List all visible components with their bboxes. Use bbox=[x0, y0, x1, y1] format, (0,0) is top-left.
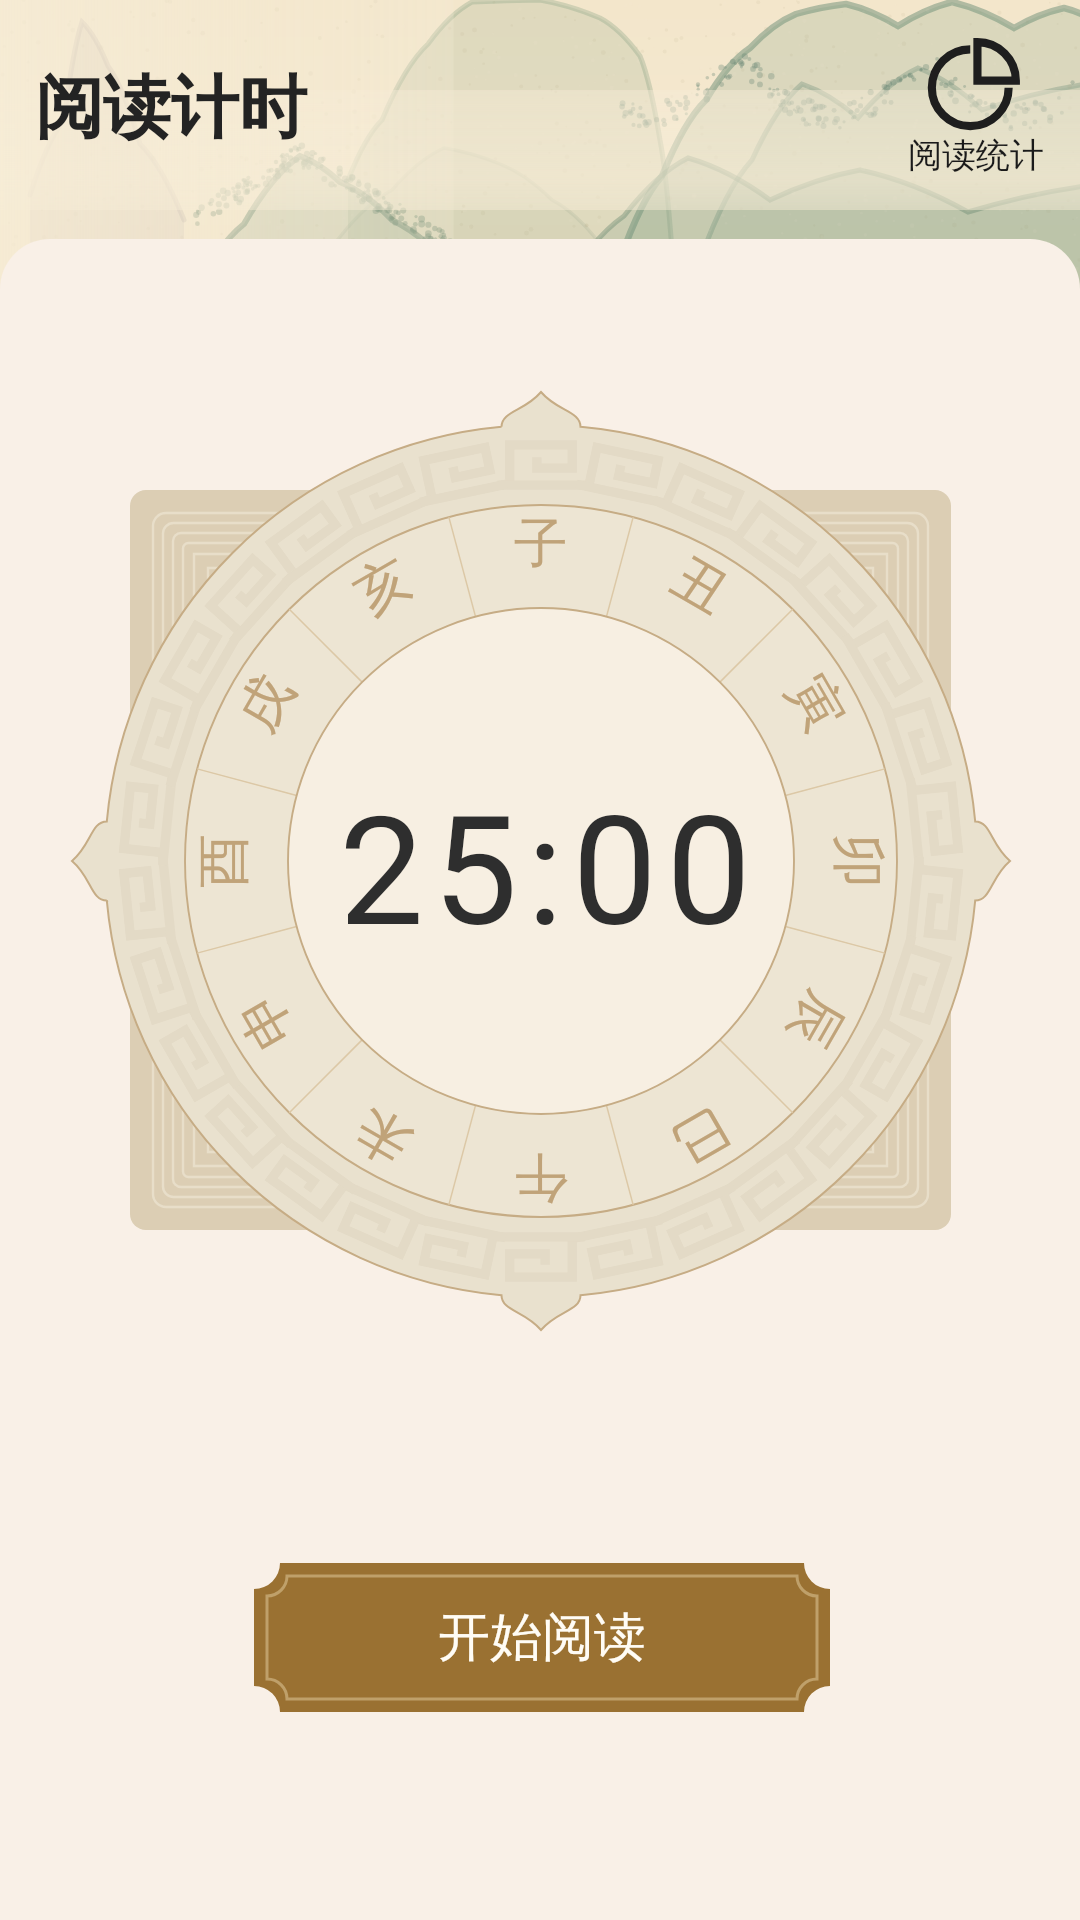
staticText: 卯 bbox=[824, 834, 892, 888]
staticText: 午 bbox=[514, 1144, 568, 1212]
staticText: 25:00 bbox=[339, 784, 761, 961]
staticText: 阅读统计 bbox=[908, 134, 1044, 177]
staticText: 戌 bbox=[223, 663, 309, 743]
staticText: 申 bbox=[223, 980, 309, 1060]
staticText: 子 bbox=[514, 510, 568, 578]
staticText: 寅 bbox=[773, 663, 859, 743]
button[interactable]: 阅读统计 bbox=[906, 34, 1046, 177]
staticText: 开始阅读 bbox=[438, 1605, 646, 1671]
staticText: 阅读计时 bbox=[35, 66, 307, 152]
staticText: 辰 bbox=[773, 980, 859, 1060]
button[interactable]: 开始阅读 bbox=[254, 1563, 830, 1712]
staticText: 巳 bbox=[660, 1093, 740, 1179]
staticText: 丑 bbox=[660, 543, 740, 629]
staticText: 酉 bbox=[190, 834, 258, 888]
staticText: 亥 bbox=[343, 543, 423, 629]
staticText: 未 bbox=[343, 1093, 423, 1179]
